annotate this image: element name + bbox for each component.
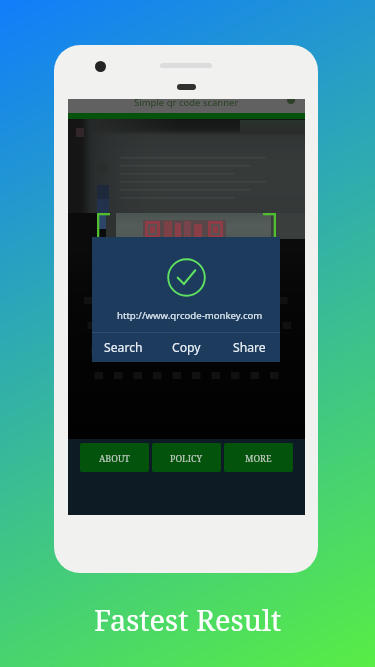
button[interactable]: Menu <box>287 99 295 104</box>
button[interactable]: MORE <box>224 443 293 472</box>
button[interactable]: POLICY <box>152 443 221 472</box>
button[interactable]: ABOUT <box>80 443 149 472</box>
staticText: ABOUT <box>99 452 130 464</box>
staticText: Share <box>233 339 266 356</box>
staticText: Copy <box>172 339 201 356</box>
staticText: POLICY <box>170 452 203 464</box>
staticText: Search <box>104 339 143 356</box>
button[interactable]: Search <box>92 333 155 362</box>
button[interactable]: Share <box>218 333 280 362</box>
staticText: http://www.qrcode-monkey.com <box>117 309 263 322</box>
staticText: Simple qr code scanner <box>134 99 239 109</box>
staticText: MORE <box>245 452 272 464</box>
button[interactable]: Copy <box>155 333 218 362</box>
staticText: Fastest Result <box>94 600 282 639</box>
